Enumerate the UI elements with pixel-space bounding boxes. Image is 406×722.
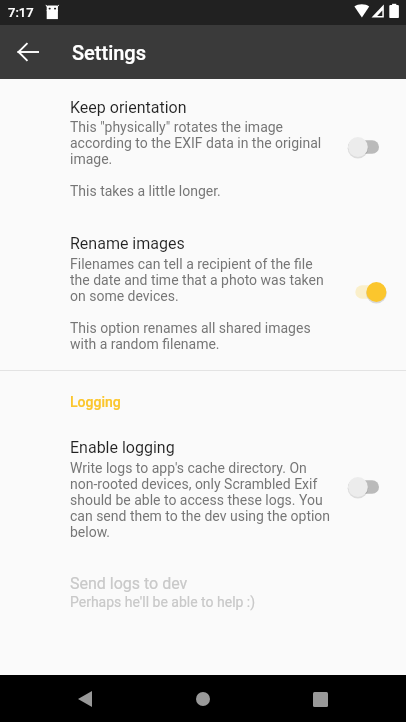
staticText: Send logs to dev bbox=[70, 574, 188, 593]
staticText: Settings bbox=[72, 41, 147, 64]
button[interactable]: Recent apps bbox=[304, 683, 336, 715]
staticText: 7:17 bbox=[8, 5, 34, 20]
button[interactable]: Toggle setting bbox=[355, 281, 395, 303]
button[interactable]: Toggle setting bbox=[347, 136, 387, 158]
staticText: Logging bbox=[70, 394, 121, 410]
button[interactable]: Rename images bbox=[0, 234, 406, 352]
button[interactable]: Send logs to dev bbox=[0, 574, 406, 614]
button[interactable]: Enable logging bbox=[0, 438, 406, 540]
staticText: Perhaps he'll be able to help :) bbox=[70, 594, 256, 610]
staticText: Rename images bbox=[70, 234, 185, 253]
staticText: Write logs to app's cache directory. On … bbox=[70, 460, 332, 540]
button[interactable]: Back bbox=[69, 683, 101, 715]
staticText: Enable logging bbox=[70, 438, 175, 457]
staticText: This "physically" rotates the image acco… bbox=[70, 119, 332, 199]
button[interactable]: Home bbox=[187, 683, 219, 715]
button[interactable]: Keep orientation bbox=[0, 98, 406, 199]
button[interactable]: Toggle setting bbox=[347, 476, 387, 498]
button[interactable]: Navigate up bbox=[16, 40, 40, 64]
staticText: Filenames can tell a recipient of the fi… bbox=[70, 256, 332, 352]
staticText: Keep orientation bbox=[70, 98, 187, 117]
